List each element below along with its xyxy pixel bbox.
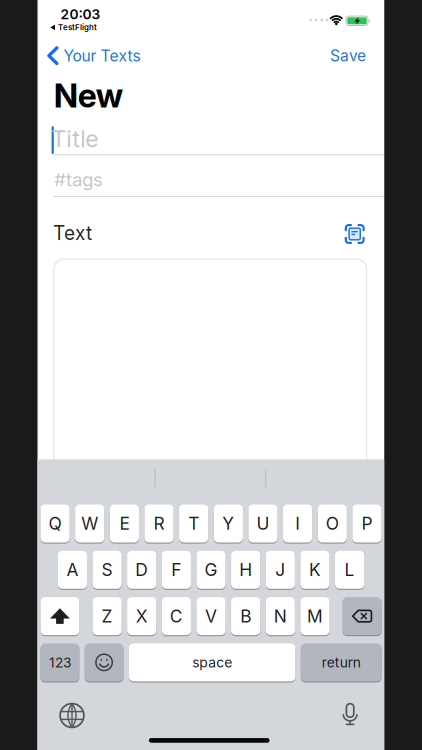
button[interactable]: 123: [40, 643, 79, 682]
staticText: 20:03: [60, 6, 100, 23]
staticText: E: [119, 513, 129, 534]
staticText: space: [192, 654, 232, 671]
button[interactable]: Y: [214, 504, 243, 543]
staticText: Q: [49, 513, 62, 534]
button[interactable]: N: [266, 596, 295, 636]
button[interactable]: E: [110, 504, 139, 543]
staticText: F: [171, 559, 181, 580]
button[interactable]: H: [231, 550, 260, 589]
button[interactable]: U: [248, 504, 277, 543]
button[interactable]: Shift: [40, 596, 79, 636]
button[interactable]: W: [75, 504, 104, 543]
staticText: TestFlight: [58, 23, 97, 32]
staticText: B: [240, 606, 251, 627]
button[interactable]: Q: [40, 504, 70, 543]
staticText: N: [274, 606, 287, 627]
staticText: I: [295, 513, 300, 534]
button[interactable]: M: [300, 596, 329, 636]
button[interactable]: B: [231, 596, 260, 636]
staticText: L: [345, 559, 355, 580]
staticText: New: [54, 76, 123, 115]
button[interactable]: Scan text: [345, 224, 365, 244]
staticText: Y: [222, 513, 234, 534]
staticText: Title: [51, 125, 98, 153]
button[interactable]: C: [162, 596, 191, 636]
staticText: Your Texts: [64, 46, 141, 65]
staticText: D: [135, 559, 148, 580]
staticText: X: [136, 606, 148, 627]
staticText: M: [307, 606, 323, 627]
button[interactable]: D: [127, 550, 156, 589]
staticText: #tags: [54, 168, 103, 191]
button[interactable]: Tags: [54, 164, 383, 194]
button[interactable]: O: [318, 504, 347, 543]
button[interactable]: Text: [54, 259, 366, 469]
staticText: V: [205, 606, 217, 627]
button[interactable]: V: [196, 596, 225, 636]
button[interactable]: space: [129, 643, 295, 682]
button[interactable]: S: [92, 550, 122, 589]
staticText: A: [66, 559, 78, 580]
staticText: Text: [53, 221, 92, 244]
button[interactable]: Delete: [343, 596, 381, 636]
button[interactable]: J: [266, 550, 295, 589]
button[interactable]: A: [58, 550, 87, 589]
button[interactable]: L: [335, 550, 364, 589]
button[interactable]: return: [301, 643, 381, 682]
staticText: P: [361, 513, 372, 534]
button[interactable]: R: [144, 504, 173, 543]
staticText: O: [326, 513, 339, 534]
button[interactable]: I: [283, 504, 312, 543]
staticText: W: [81, 513, 98, 534]
staticText: J: [275, 559, 285, 580]
staticText: H: [239, 559, 252, 580]
button[interactable]: T: [179, 504, 208, 543]
button[interactable]: Emoji: [85, 643, 123, 682]
button[interactable]: X: [127, 596, 156, 636]
staticText: G: [204, 559, 217, 580]
staticText: T: [188, 513, 199, 534]
staticText: 123: [49, 654, 71, 671]
button[interactable]: F: [162, 550, 191, 589]
button[interactable]: Dictate: [342, 703, 358, 726]
button[interactable]: Back: [47, 43, 207, 69]
button[interactable]: Title: [51, 122, 382, 156]
button[interactable]: Save: [276, 42, 366, 68]
button[interactable]: K: [300, 550, 329, 589]
staticText: return: [322, 654, 361, 671]
staticText: U: [256, 513, 269, 534]
button[interactable]: P: [352, 504, 381, 543]
staticText: C: [170, 606, 183, 627]
staticText: K: [309, 559, 321, 580]
button[interactable]: G: [196, 550, 225, 589]
button[interactable]: Z: [92, 596, 122, 636]
staticText: S: [101, 559, 112, 580]
staticText: Save: [330, 46, 366, 65]
button[interactable]: Next keyboard: [59, 703, 85, 728]
staticText: Z: [101, 606, 112, 627]
staticText: R: [153, 513, 164, 534]
